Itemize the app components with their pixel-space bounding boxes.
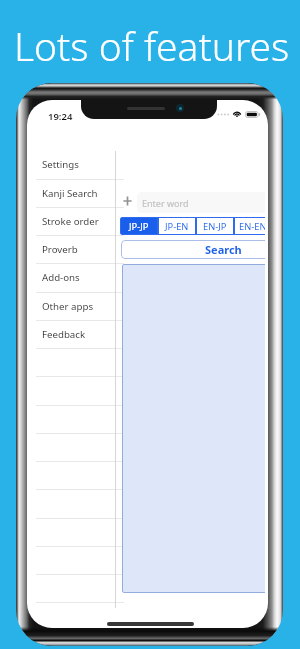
staticText: Lots of features: [14, 19, 290, 72]
button[interactable]: JP-EN: [158, 217, 196, 235]
staticText: 19:24: [48, 110, 73, 123]
button[interactable]: Other apps: [27, 292, 115, 320]
button[interactable]: Add word: [123, 195, 132, 207]
button[interactable]: Feedback: [27, 320, 115, 348]
staticText: Enter word: [142, 197, 189, 209]
button[interactable]: Stroke order: [27, 207, 115, 235]
staticText: Kanji Search: [42, 187, 98, 200]
staticText: Proverb: [42, 243, 78, 256]
button[interactable]: EN-EN: [234, 217, 265, 235]
staticText: EN-EN: [239, 220, 265, 233]
staticText: Settings: [42, 158, 79, 171]
staticText: Other apps: [42, 300, 94, 313]
staticText: Add-ons: [42, 271, 80, 284]
button[interactable]: Settings: [27, 150, 115, 178]
button[interactable]: Enter word: [137, 192, 265, 213]
staticText: Stroke order: [42, 215, 99, 228]
button[interactable]: Kanji Search: [27, 179, 115, 207]
staticText: Feedback: [42, 328, 86, 341]
staticText: JP-JP: [129, 220, 149, 233]
staticText: EN-JP: [203, 220, 227, 233]
staticText: JP-EN: [165, 220, 189, 233]
button[interactable]: Add-ons: [27, 263, 115, 291]
button[interactable]: JP-JP: [120, 217, 158, 235]
button[interactable]: Proverb: [27, 235, 115, 263]
button[interactable]: EN-JP: [196, 217, 234, 235]
button[interactable]: Search: [121, 240, 265, 259]
staticText: Search: [205, 242, 242, 257]
